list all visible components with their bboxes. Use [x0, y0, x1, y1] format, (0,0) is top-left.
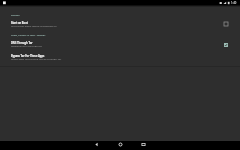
button[interactable]: Back	[90, 140, 102, 149]
button[interactable]: Unchecked	[221, 19, 231, 29]
staticText: Start on Boot	[11, 21, 28, 24]
staticText: Select apps that should not go through T…	[11, 57, 62, 60]
button[interactable]: Home	[114, 140, 126, 149]
staticText: Bypass Tor For These Apps	[11, 54, 45, 57]
button[interactable]: Recents	[137, 140, 149, 149]
staticText: Settings	[11, 14, 20, 17]
button[interactable]	[0, 53, 240, 63]
staticText: 1:40	[231, 1, 237, 5]
button[interactable]	[0, 19, 240, 29]
staticText: Requests DNS through Tor	[11, 44, 43, 47]
staticText: Orbot, Protect All Apps - Settings	[11, 34, 46, 37]
staticText: Start Orbot when device is powered on	[11, 24, 57, 27]
button[interactable]	[0, 39, 240, 49]
button[interactable]: Checked	[221, 40, 231, 50]
staticText: DNS Through Tor	[11, 41, 33, 44]
